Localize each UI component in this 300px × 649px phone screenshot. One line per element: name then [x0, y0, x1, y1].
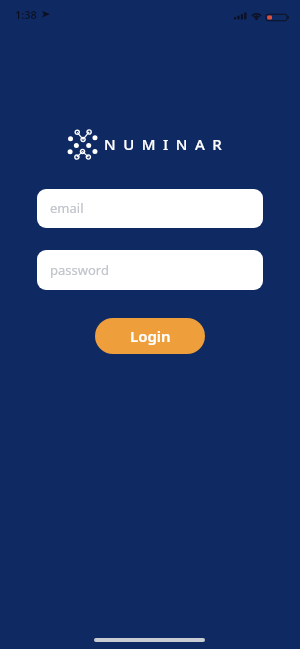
button[interactable]: Login	[95, 318, 205, 354]
staticText: Login	[130, 326, 171, 346]
button[interactable]: email	[37, 189, 263, 228]
staticText: email	[50, 199, 84, 217]
staticText: NUMINAR	[104, 134, 230, 154]
staticText: 1:38	[15, 7, 37, 22]
button[interactable]: password	[37, 250, 263, 290]
staticText: password	[50, 261, 109, 279]
